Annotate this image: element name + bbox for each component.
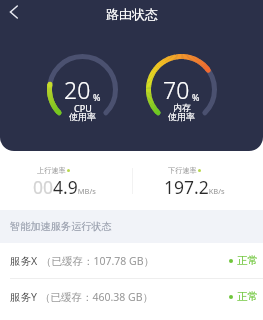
staticText: 正常 (237, 254, 258, 267)
staticText: 上行速率 (37, 166, 66, 175)
staticText: 70 (163, 74, 190, 105)
staticText: 20 (64, 74, 91, 105)
staticText: 服务Y (10, 290, 37, 304)
staticText: 正常 (237, 290, 258, 303)
staticText: % (192, 91, 200, 103)
staticText: 197.2KB/s (164, 175, 225, 199)
staticText: 使用率 (69, 111, 96, 122)
button[interactable]: 服务X (0, 243, 263, 278)
staticText: 智能加速服务运行状态 (10, 220, 112, 233)
staticText: （已缓存：460.38 GB） (40, 290, 154, 304)
button[interactable]: 服务Y (0, 279, 263, 314)
staticText: 路由状态 (106, 6, 158, 22)
staticText: 内存 (173, 102, 191, 113)
staticText: 服务X (10, 254, 38, 268)
staticText: 下行速率 (168, 166, 197, 175)
staticText: CPU (74, 102, 92, 114)
button[interactable]: Back (0, 0, 28, 28)
staticText: 004.9MB/s (33, 175, 96, 199)
staticText: % (93, 91, 101, 103)
staticText: 使用率 (168, 111, 195, 122)
staticText: （已缓存：107.78 GB） (41, 254, 155, 268)
